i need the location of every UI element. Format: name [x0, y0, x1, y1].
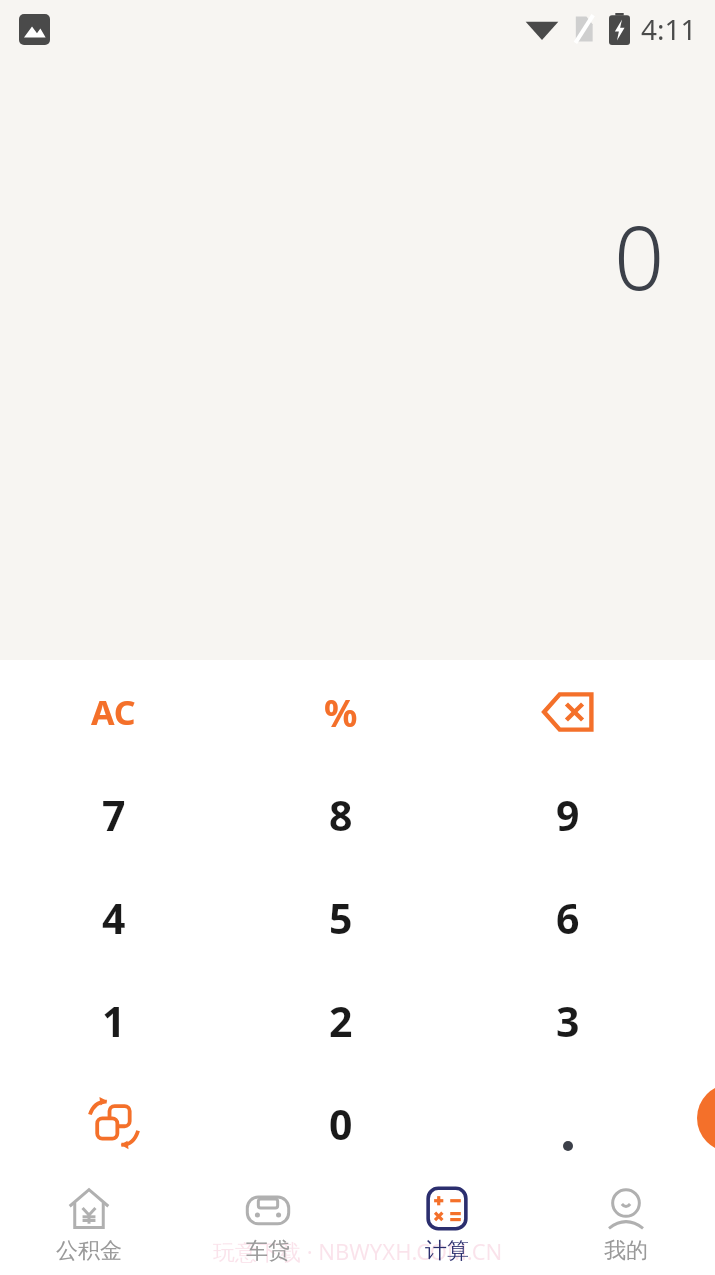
- staticText: 4:11: [641, 10, 697, 48]
- button[interactable]: 5: [227, 866, 454, 969]
- staticText: 3: [556, 993, 580, 1049]
- staticText: 玩意下载 · NBWYXH.COM.CN: [213, 1236, 503, 1266]
- staticText: 0: [329, 1096, 353, 1152]
- button[interactable]: 9: [454, 763, 681, 866]
- other: Unit conversion: [84, 1094, 144, 1154]
- button[interactable]: 7: [0, 763, 227, 866]
- staticText: 6: [556, 890, 580, 946]
- staticText: 0: [614, 196, 665, 316]
- staticText: %: [324, 687, 358, 737]
- staticText: 车贷: [246, 1237, 290, 1265]
- button[interactable]: 1: [0, 969, 227, 1072]
- staticText: 5: [329, 890, 353, 946]
- button[interactable]: 4: [0, 866, 227, 969]
- button[interactable]: 2: [227, 969, 454, 1072]
- button[interactable]: %: [227, 660, 454, 763]
- staticText: AC: [91, 689, 136, 735]
- staticText: 1: [102, 993, 126, 1049]
- button[interactable]: 6: [454, 866, 681, 969]
- staticText: 7: [102, 787, 126, 843]
- button[interactable]: 公积金: [0, 1175, 178, 1275]
- button[interactable]: 车贷: [178, 1175, 357, 1275]
- button[interactable]: 3: [454, 969, 681, 1072]
- other: Backspace: [539, 683, 597, 741]
- button[interactable]: AC: [0, 660, 227, 763]
- staticText: 公积金: [56, 1237, 122, 1265]
- staticText: 2: [329, 993, 353, 1049]
- button[interactable]: 8: [227, 763, 454, 866]
- staticText: 9: [556, 787, 580, 843]
- staticText: 计算: [425, 1237, 469, 1265]
- button[interactable]: Equals: [697, 1084, 715, 1152]
- button[interactable]: 计算: [357, 1175, 536, 1275]
- staticText: 4: [102, 890, 126, 946]
- button[interactable]: Backspace: [454, 660, 681, 763]
- button[interactable]: Unit conversion: [0, 1072, 227, 1175]
- staticText: 8: [329, 787, 353, 843]
- button[interactable]: [454, 1072, 681, 1175]
- button[interactable]: 0: [227, 1072, 454, 1175]
- staticText: 我的: [604, 1237, 648, 1265]
- other: Screenshot: [19, 14, 50, 45]
- button[interactable]: 我的: [536, 1175, 715, 1275]
